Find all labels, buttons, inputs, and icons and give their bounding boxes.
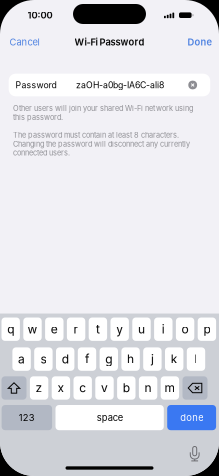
- staticText: a: [18, 352, 25, 366]
- staticText: g: [105, 352, 112, 366]
- staticText: 123: [19, 412, 35, 423]
- button[interactable]: v: [95, 376, 114, 400]
- button[interactable]: space: [55, 405, 164, 430]
- staticText: Wi-Fi Password: [74, 36, 144, 48]
- button[interactable]: x: [52, 376, 70, 400]
- button[interactable]: done: [167, 405, 216, 430]
- button[interactable]: e: [45, 317, 63, 341]
- button[interactable]: n: [139, 376, 157, 400]
- staticText: v: [101, 381, 108, 395]
- button[interactable]: Cancel: [0, 31, 45, 53]
- button[interactable]: a: [12, 347, 31, 371]
- staticText: d: [62, 352, 69, 366]
- button[interactable]: g: [100, 347, 118, 371]
- button[interactable]: Shift: [1, 376, 26, 400]
- staticText: j: [151, 352, 154, 366]
- button[interactable]: w: [23, 317, 42, 341]
- staticText: Cancel: [9, 36, 39, 48]
- button[interactable]: h: [121, 347, 140, 371]
- button[interactable]: r: [67, 317, 85, 341]
- staticText: l: [194, 352, 197, 366]
- button[interactable]: s: [34, 347, 53, 371]
- staticText: w: [27, 322, 37, 336]
- button[interactable]: d: [56, 347, 74, 371]
- button[interactable]: Clear text: [186, 74, 200, 96]
- staticText: f: [85, 352, 89, 366]
- staticText: Done: [187, 36, 212, 48]
- staticText: t: [96, 322, 100, 336]
- staticText: z: [36, 381, 43, 395]
- button[interactable]: Done: [181, 31, 219, 53]
- staticText: u: [138, 322, 145, 336]
- button[interactable]: Delete: [182, 376, 207, 400]
- button[interactable]: Dictate: [190, 445, 200, 462]
- staticText: c: [79, 381, 86, 395]
- button[interactable]: l: [187, 347, 205, 371]
- staticText: h: [127, 352, 134, 366]
- staticText: zaOH-a0bg-IA6C-ali8: [76, 80, 164, 90]
- staticText: m: [164, 381, 175, 395]
- button[interactable]: q: [1, 317, 20, 341]
- staticText: e: [51, 322, 58, 336]
- button[interactable]: z: [30, 376, 48, 400]
- button[interactable]: u: [132, 317, 151, 341]
- staticText: o: [182, 322, 189, 336]
- staticText: The password must contain at least 8 cha…: [13, 131, 190, 157]
- staticText: x: [57, 381, 64, 395]
- staticText: n: [145, 381, 152, 395]
- button[interactable]: c: [73, 376, 92, 400]
- button[interactable]: t: [89, 317, 107, 341]
- staticText: 10:00: [27, 10, 52, 21]
- staticText: k: [171, 352, 178, 366]
- button[interactable]: k: [165, 347, 183, 371]
- staticText: y: [116, 322, 123, 336]
- staticText: i: [162, 322, 165, 336]
- button[interactable]: i: [154, 317, 172, 341]
- staticText: s: [40, 352, 46, 366]
- button[interactable]: p: [198, 317, 216, 341]
- staticText: p: [203, 322, 210, 336]
- button[interactable]: m: [161, 376, 179, 400]
- button[interactable]: f: [78, 347, 96, 371]
- button[interactable]: y: [110, 317, 129, 341]
- staticText: space: [97, 412, 123, 423]
- button[interactable]: b: [117, 376, 135, 400]
- staticText: Password: [15, 80, 56, 90]
- staticText: r: [74, 322, 79, 336]
- button[interactable]: 123: [2, 405, 52, 430]
- staticText: done: [180, 412, 203, 423]
- staticText: q: [7, 322, 14, 336]
- button[interactable]: o: [176, 317, 194, 341]
- staticText: b: [123, 381, 130, 395]
- staticText: Other users will join your shared Wi-Fi …: [13, 104, 193, 122]
- button[interactable]: j: [143, 347, 162, 371]
